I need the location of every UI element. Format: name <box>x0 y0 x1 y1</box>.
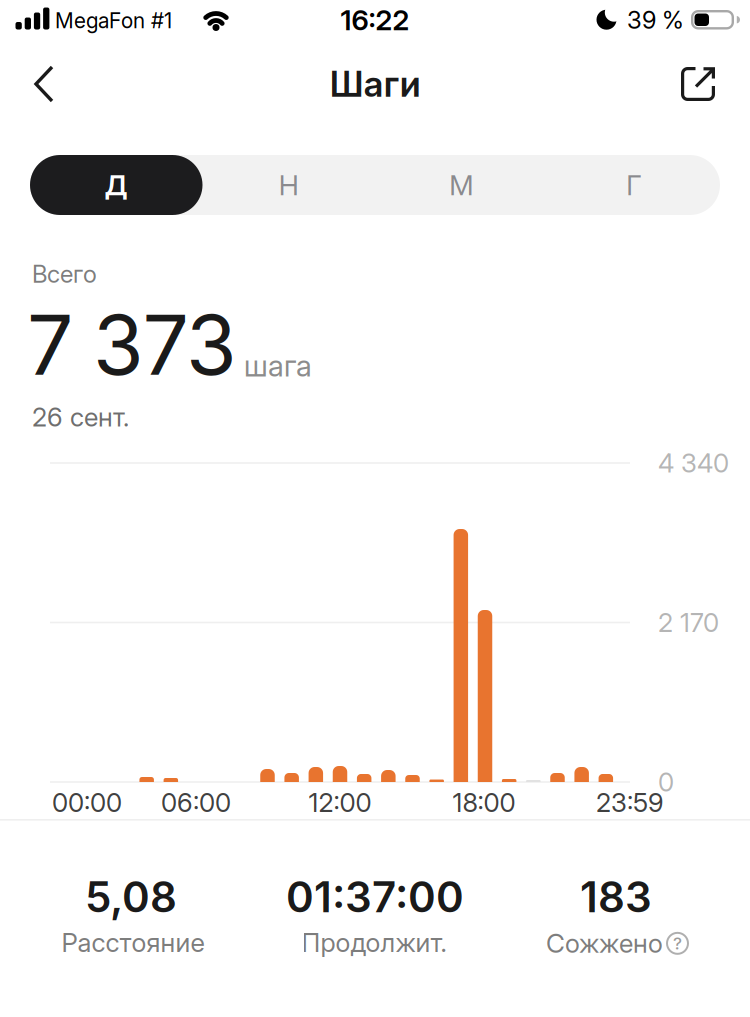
staticText: Сожжено <box>546 928 663 959</box>
staticText: 2 170 <box>658 607 719 638</box>
button[interactable]: Share <box>669 55 727 113</box>
staticText: 06:00 <box>161 787 231 818</box>
staticText: 26 сент. <box>32 402 129 432</box>
button[interactable]: Н <box>202 155 375 215</box>
staticText: 00:00 <box>52 787 122 818</box>
staticText: 7 373 <box>27 297 237 393</box>
staticText: 4 340 <box>658 448 729 478</box>
staticText: Г <box>626 168 641 201</box>
staticText: 23:59 <box>596 787 664 818</box>
staticText: М <box>449 168 473 201</box>
staticText: Продолжит. <box>301 927 446 958</box>
staticText: Шаги <box>329 63 420 105</box>
button[interactable]: Help <box>0 0 689 959</box>
staticText: ? <box>673 933 682 953</box>
button[interactable]: Г <box>547 155 720 215</box>
staticText: Д <box>105 168 128 201</box>
button[interactable]: Back <box>22 58 74 110</box>
button[interactable]: Д <box>30 155 202 215</box>
staticText: MegaFon #1 <box>55 8 172 33</box>
staticText: 0 <box>658 767 674 797</box>
staticText: 183 <box>580 872 652 922</box>
staticText: шага <box>244 348 312 383</box>
staticText: 16:22 <box>340 3 409 36</box>
staticText: 12:00 <box>308 787 371 818</box>
staticText: 5,08 <box>85 872 177 922</box>
staticText: Всего <box>32 260 97 288</box>
button[interactable]: М <box>375 155 547 215</box>
staticText: 01:37:00 <box>286 872 464 922</box>
staticText: Н <box>279 168 299 201</box>
staticText: 39 % <box>627 6 684 34</box>
staticText: 18:00 <box>452 787 515 818</box>
staticText: Расстояние <box>61 927 204 958</box>
